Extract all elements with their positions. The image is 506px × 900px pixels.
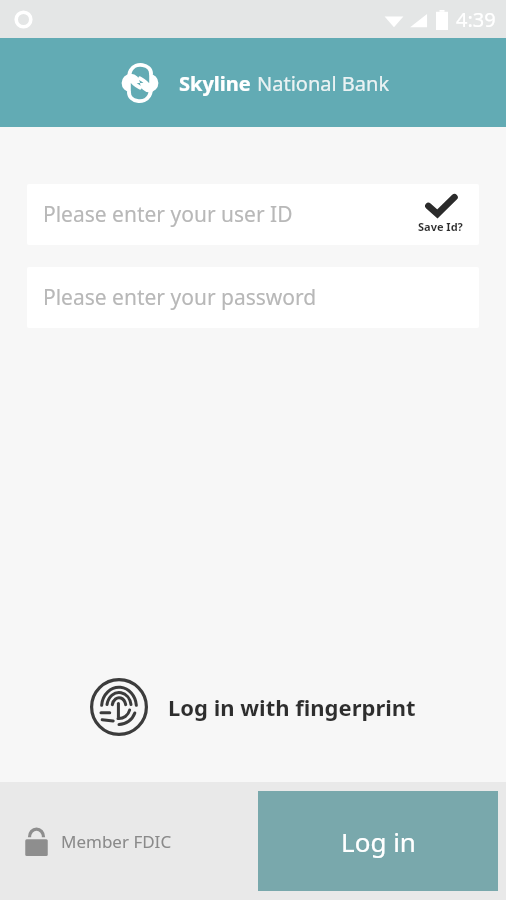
staticText: Please enter your user ID <box>43 200 293 229</box>
button[interactable]: Please enter your user ID <box>27 184 479 245</box>
button[interactable]: Log in with fingerprint <box>0 672 506 742</box>
staticText: Skyline <box>179 70 251 97</box>
staticText: Please enter your password <box>43 283 317 312</box>
staticText: 4:39 <box>456 6 496 33</box>
button[interactable]: Save Id? <box>414 193 467 236</box>
staticText: Member FDIC <box>61 830 172 853</box>
staticText: Save Id? <box>418 219 463 234</box>
staticText: Log in <box>341 824 416 859</box>
button[interactable]: Member FDIC <box>22 821 174 862</box>
button[interactable]: Please enter your password <box>27 267 479 328</box>
staticText: National Bank <box>257 70 390 97</box>
button[interactable]: Log in <box>258 791 498 891</box>
staticText: Log in with fingerprint <box>168 692 416 722</box>
